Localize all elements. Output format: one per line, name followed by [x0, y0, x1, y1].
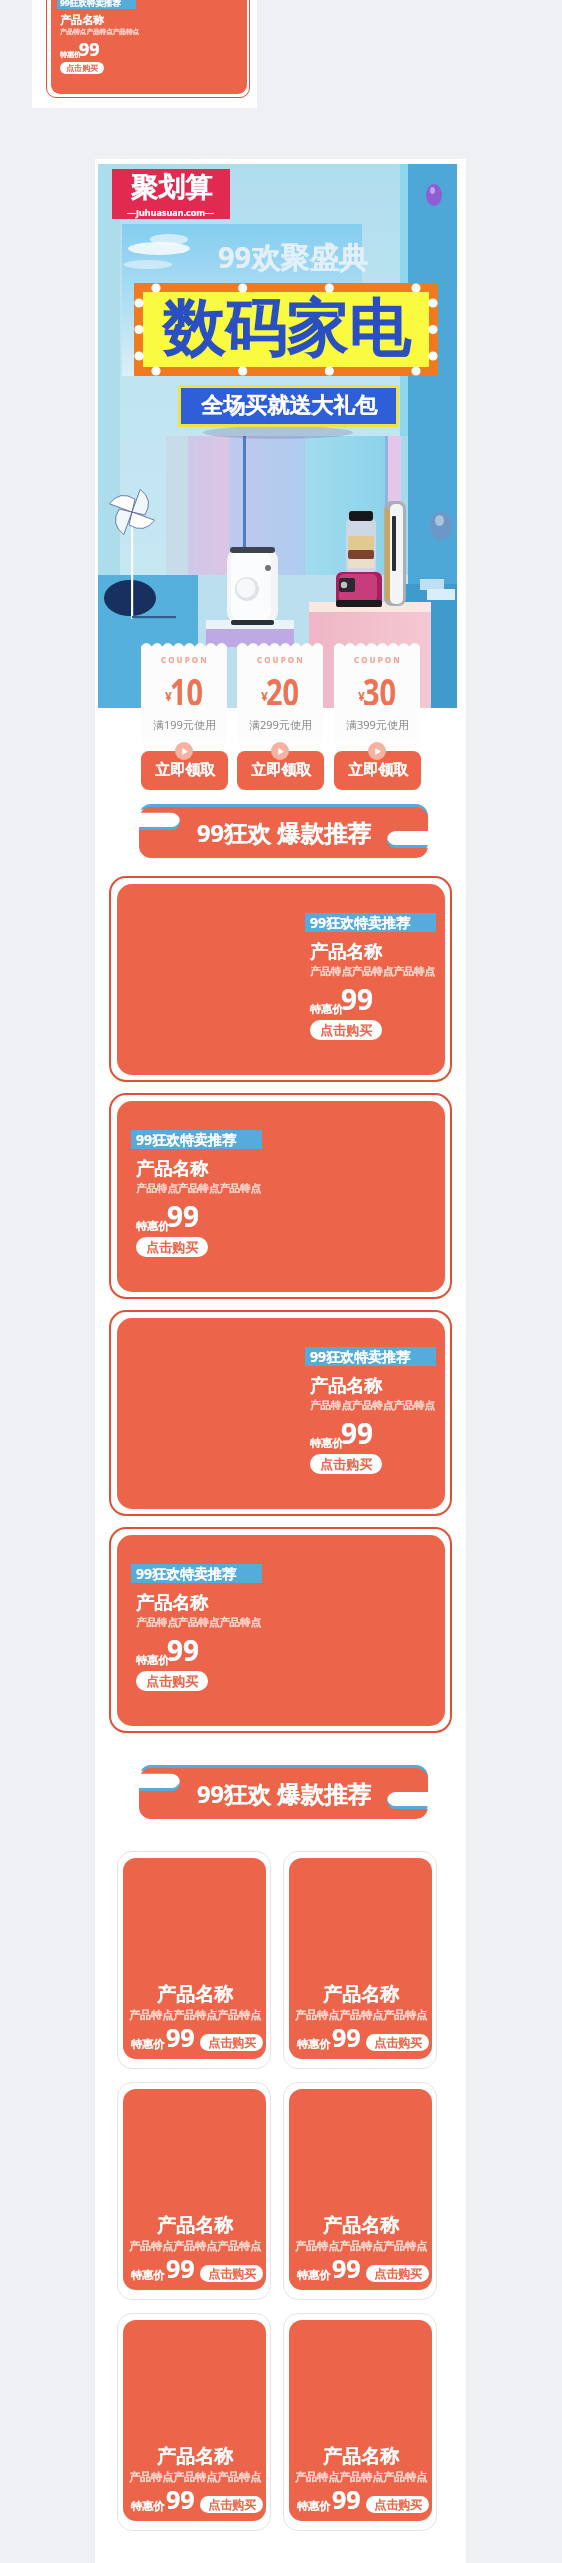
staticText: 点击购买 — [374, 2266, 422, 2281]
button[interactable]: 产品名称 — [123, 2320, 266, 2521]
button[interactable]: 点击购买 — [200, 2265, 263, 2282]
staticText: 特惠价 — [297, 2499, 330, 2513]
staticText: 产品名称 — [157, 2445, 233, 2469]
staticText: 产品特点产品特点产品特点 — [136, 1182, 261, 1195]
staticText: C O U P O N — [161, 654, 207, 665]
button[interactable]: 立即领取 — [237, 751, 324, 790]
button[interactable]: C O U P O N — [237, 642, 323, 743]
button[interactable]: 99狂欢特卖推荐 — [117, 1101, 445, 1292]
staticText: 立即领取 — [155, 761, 215, 780]
button[interactable]: 点击购买 — [136, 1671, 208, 1691]
staticText: ¥ — [165, 688, 172, 704]
button[interactable]: 点击购买 — [366, 2034, 429, 2051]
staticText: 99狂欢特卖推荐 — [310, 1347, 411, 1366]
staticText: 产品名称 — [323, 2445, 399, 2469]
button[interactable]: 立即领取 — [334, 751, 421, 790]
staticText: 产品特点产品特点产品特点 — [60, 28, 140, 36]
staticText: 特惠价 — [310, 1002, 343, 1016]
staticText: 99 — [341, 1414, 374, 1450]
staticText: 产品特点产品特点产品特点 — [129, 2470, 261, 2484]
staticText: 产品名称 — [60, 13, 104, 27]
button[interactable]: C O U P O N — [334, 642, 420, 743]
staticText: ¥ — [261, 688, 268, 704]
button[interactable]: 点击购买 — [200, 2034, 263, 2051]
staticText: 产品名称 — [157, 2214, 233, 2238]
button[interactable]: 产品名称 — [123, 1858, 266, 2059]
button[interactable]: 99狂欢 爆款推荐 — [139, 804, 428, 858]
button[interactable]: 99狂欢 爆款推荐 — [139, 1765, 428, 1819]
staticText: 99狂欢 爆款推荐 — [197, 1778, 371, 1810]
staticText: 99 — [167, 1631, 200, 1667]
button[interactable]: 产品名称 — [123, 2089, 266, 2290]
staticText: 特惠价 — [310, 1436, 343, 1450]
button[interactable]: 点击购买 — [200, 2496, 263, 2513]
staticText: 99狂欢特卖推荐 — [136, 1564, 237, 1583]
button[interactable]: 点击购买 — [366, 2265, 429, 2282]
staticText: 99 — [332, 2020, 361, 2051]
button[interactable]: 聚划算 — [98, 164, 457, 708]
staticText: 产品特点产品特点产品特点 — [295, 2470, 427, 2484]
staticText: 产品名称 — [136, 1592, 208, 1615]
staticText: 全场买就送大礼包 — [201, 392, 377, 420]
staticText: 点击购买 — [208, 2035, 256, 2050]
staticText: 99狂欢特卖推荐 — [136, 1130, 237, 1149]
button[interactable]: 点击购买 — [310, 1454, 382, 1474]
staticText: 特惠价 — [60, 50, 81, 59]
button[interactable]: 点击购买 — [60, 62, 104, 74]
button[interactable]: 产品名称 — [289, 2089, 432, 2290]
staticText: 99 — [166, 2020, 195, 2051]
staticText: C O U P O N — [354, 654, 400, 665]
button[interactable]: 点击购买 — [310, 1020, 382, 1040]
staticText: 产品名称 — [323, 2214, 399, 2238]
staticText: 99 — [332, 2251, 361, 2282]
staticText: 特惠价 — [131, 2499, 164, 2513]
staticText: 满199元使用 — [153, 717, 216, 732]
staticText: 产品特点产品特点产品特点 — [310, 1399, 435, 1412]
button[interactable]: C O U P O N — [141, 642, 227, 743]
staticText: 产品特点产品特点产品特点 — [295, 2239, 427, 2253]
staticText: 10 — [170, 666, 203, 705]
button[interactable]: 99狂欢特卖推荐 — [51, 0, 247, 94]
staticText: 产品特点产品特点产品特点 — [295, 2008, 427, 2022]
button[interactable]: 99狂欢特卖推荐 — [117, 1535, 445, 1726]
staticText: 产品名称 — [310, 1375, 382, 1398]
staticText: 点击购买 — [208, 2497, 256, 2512]
staticText: 99 — [167, 1197, 200, 1233]
staticText: 产品特点产品特点产品特点 — [129, 2239, 261, 2253]
staticText: 特惠价 — [297, 2037, 330, 2051]
staticText: 聚划算 — [131, 171, 212, 205]
staticText: 99 — [332, 2482, 361, 2513]
button[interactable]: 点击购买 — [136, 1237, 208, 1257]
staticText: 数码家电 — [162, 290, 410, 368]
staticText: 99狂欢特卖推荐 — [310, 913, 411, 932]
staticText: 99狂欢 爆款推荐 — [197, 817, 371, 849]
button[interactable]: 产品名称 — [289, 2320, 432, 2521]
staticText: 特惠价 — [136, 1653, 169, 1667]
staticText: 点击购买 — [374, 2035, 422, 2050]
staticText: 产品特点产品特点产品特点 — [136, 1616, 261, 1629]
other: 领取优惠券 — [271, 742, 289, 760]
staticText: 满399元使用 — [346, 717, 409, 732]
button[interactable]: 99狂欢特卖推荐 — [117, 884, 445, 1075]
staticText: 99 — [341, 980, 374, 1016]
staticText: 立即领取 — [348, 761, 408, 780]
staticText: 点击购买 — [146, 1239, 198, 1255]
other: 领取优惠券 — [368, 742, 386, 760]
staticText: 99 — [166, 2482, 195, 2513]
staticText: 特惠价 — [297, 2268, 330, 2282]
button[interactable]: 产品名称 — [289, 1858, 432, 2059]
staticText: 99 — [166, 2251, 195, 2282]
staticText: 点击购买 — [208, 2266, 256, 2281]
staticText: 点击购买 — [320, 1022, 372, 1038]
button[interactable]: 立即领取 — [141, 751, 228, 790]
staticText: 特惠价 — [136, 1219, 169, 1233]
staticText: 产品名称 — [136, 1158, 208, 1181]
staticText: 产品特点产品特点产品特点 — [310, 965, 435, 978]
staticText: 99 — [79, 37, 100, 59]
staticText: 点击购买 — [66, 63, 98, 73]
staticText: 立即领取 — [251, 761, 311, 780]
button[interactable]: 99狂欢特卖推荐 — [117, 1318, 445, 1509]
staticText: 产品名称 — [310, 941, 382, 964]
button[interactable]: 点击购买 — [366, 2496, 429, 2513]
staticText: 产品名称 — [157, 1983, 233, 2007]
